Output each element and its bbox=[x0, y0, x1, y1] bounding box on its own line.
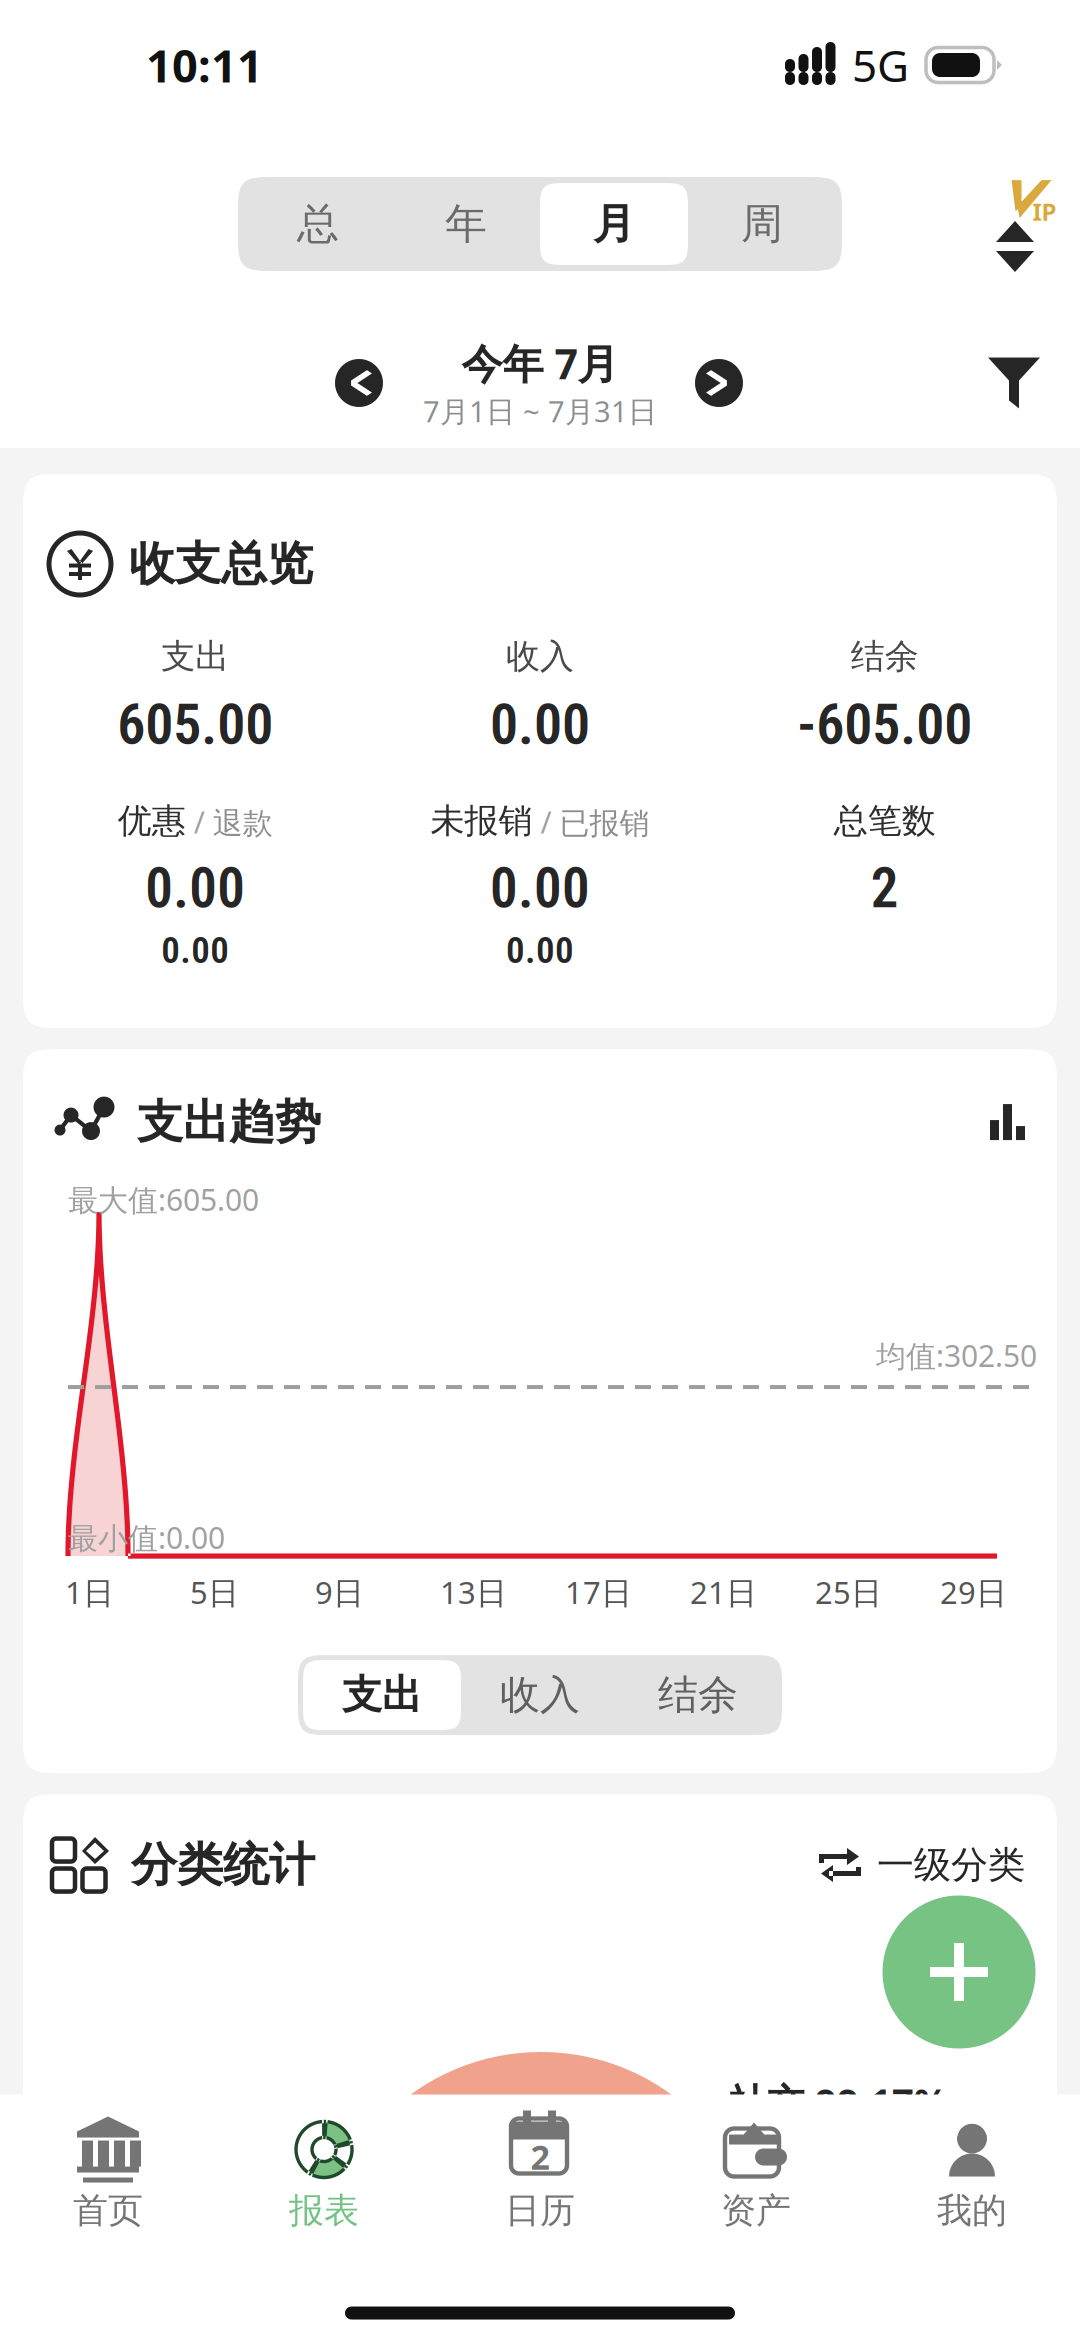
staticText: 收入 bbox=[506, 635, 574, 678]
button[interactable]: 首页 bbox=[0, 2116, 216, 2232]
button[interactable]: Sort order bbox=[996, 221, 1034, 272]
staticText: 月 bbox=[593, 197, 635, 250]
button[interactable]: 资产 bbox=[648, 2116, 864, 2232]
staticText: 支出趋势 bbox=[137, 1093, 321, 1151]
staticText: 9日 bbox=[315, 1571, 364, 1613]
staticText: 21日 bbox=[690, 1571, 757, 1613]
staticText: 收支总览 bbox=[129, 535, 313, 593]
staticText: 17日 bbox=[565, 1571, 632, 1613]
staticText: -605.00 bbox=[797, 692, 972, 757]
staticText: 0.00 bbox=[145, 856, 245, 921]
staticText: 最大值:605.00 bbox=[68, 1179, 259, 1220]
button[interactable]: 年 bbox=[392, 183, 540, 265]
staticText: 0.00 bbox=[506, 929, 574, 972]
staticText: 周 bbox=[741, 197, 783, 250]
staticText: 0.00 bbox=[490, 856, 590, 921]
button[interactable]: 报表 bbox=[216, 2116, 432, 2232]
staticText: 5G bbox=[852, 35, 909, 95]
staticText: 总 bbox=[297, 197, 339, 250]
staticText: / bbox=[540, 801, 551, 842]
staticText: 25日 bbox=[815, 1571, 882, 1613]
staticText: 一级分类 bbox=[877, 1842, 1025, 1888]
button[interactable]: 周 bbox=[688, 183, 836, 265]
staticText: 未报销 bbox=[430, 799, 532, 842]
staticText: 支出 bbox=[342, 1670, 422, 1720]
button[interactable]: 2 bbox=[432, 2116, 648, 2232]
button[interactable]: Next period bbox=[695, 359, 743, 407]
staticText: / bbox=[194, 801, 205, 842]
button[interactable]: Add transaction bbox=[882, 1895, 1035, 2048]
staticText: 5日 bbox=[190, 1571, 239, 1613]
staticText: 分类统计 bbox=[131, 1836, 315, 1894]
staticText: 7月1日 ~ 7月31日 bbox=[423, 391, 657, 431]
staticText: 优惠 bbox=[118, 799, 186, 842]
staticText: 结余 bbox=[851, 635, 919, 678]
staticText: 报表 bbox=[289, 2188, 359, 2232]
staticText: 社交 99.17% bbox=[729, 2076, 948, 2128]
staticText: 支出 bbox=[161, 635, 229, 678]
button[interactable]: Previous period bbox=[335, 359, 383, 407]
staticText: 均值:302.50 bbox=[876, 1335, 1037, 1376]
button[interactable]: 支出 bbox=[303, 1660, 461, 1730]
staticText: 29日 bbox=[940, 1571, 1007, 1613]
button[interactable]: Bar chart bbox=[990, 1104, 1025, 1140]
staticText: 收入 bbox=[500, 1670, 580, 1720]
staticText: 已报销 bbox=[559, 804, 649, 842]
button[interactable]: 一级分类 bbox=[817, 1842, 1025, 1888]
staticText: 首页 bbox=[73, 2188, 143, 2232]
staticText: 1日 bbox=[65, 1571, 114, 1613]
button[interactable]: 总 bbox=[244, 183, 392, 265]
staticText: 10:11 bbox=[146, 34, 263, 96]
staticText: 总笔数 bbox=[834, 799, 936, 842]
staticText: 0.00 bbox=[490, 692, 590, 757]
staticText: 2 bbox=[871, 856, 899, 921]
staticText: 13日 bbox=[440, 1571, 507, 1613]
button[interactable]: 收入 bbox=[461, 1660, 619, 1730]
staticText: 最小值:0.00 bbox=[68, 1517, 225, 1558]
staticText: 日历 bbox=[505, 2188, 575, 2232]
staticText: 2 bbox=[530, 2133, 549, 2180]
button[interactable]: 月 bbox=[540, 183, 688, 265]
staticText: IP bbox=[1032, 195, 1056, 228]
staticText: 结余 bbox=[658, 1670, 738, 1720]
button[interactable]: 我的 bbox=[864, 2116, 1080, 2232]
staticText: 605.00 bbox=[117, 692, 273, 757]
button[interactable]: Filter bbox=[988, 357, 1040, 408]
staticText: 退款 bbox=[213, 804, 273, 842]
staticText: 0.00 bbox=[161, 929, 229, 972]
staticText: 年 bbox=[445, 197, 487, 250]
button[interactable]: 结余 bbox=[619, 1660, 777, 1730]
staticText: 我的 bbox=[937, 2188, 1007, 2232]
staticText: 资产 bbox=[721, 2188, 791, 2232]
staticText: 今年 7月 bbox=[461, 335, 618, 391]
